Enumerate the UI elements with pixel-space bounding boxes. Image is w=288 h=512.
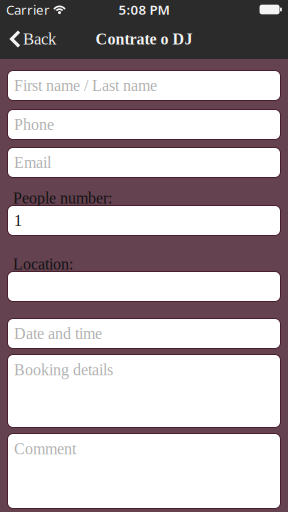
button[interactable]: First name / Last name	[8, 71, 280, 100]
button[interactable]: 1	[8, 206, 280, 235]
button[interactable]: Phone	[8, 110, 280, 139]
staticText: 5:08 PM	[118, 1, 169, 18]
staticText: Booking details	[14, 361, 113, 379]
staticText: Carrier	[6, 1, 50, 18]
staticText: Back	[23, 30, 56, 48]
staticText: First name / Last name	[14, 77, 157, 94]
staticText: Comment	[14, 440, 76, 458]
staticText: 1	[14, 212, 22, 229]
staticText: People number:	[13, 189, 112, 207]
staticText: Email	[14, 154, 51, 171]
button[interactable]: Comment	[8, 434, 280, 508]
button[interactable]: Booking details	[8, 355, 280, 427]
staticText: Contrate o DJ	[95, 30, 192, 48]
button[interactable]: Date and time	[8, 319, 280, 348]
button[interactable]	[8, 272, 280, 301]
staticText: Location:	[13, 255, 73, 273]
staticText: Phone	[14, 116, 54, 133]
button[interactable]: Back	[0, 19, 64, 59]
staticText: Date and time	[14, 325, 102, 342]
button[interactable]: Email	[8, 148, 280, 177]
